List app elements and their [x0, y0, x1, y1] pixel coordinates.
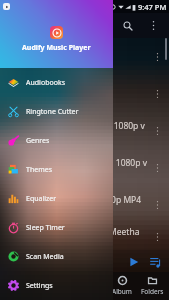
button[interactable]: Song options	[150, 124, 164, 138]
staticText: Thoda Thoda Pyar Khatta Meetha	[6, 226, 140, 238]
button[interactable]: Ringtone Cutter	[0, 97, 113, 126]
staticText: Tum Hi Ho	[6, 46, 48, 58]
button[interactable]: Song options	[150, 50, 164, 64]
staticText: Chahun Main Ya Na full HD 1080p v	[6, 157, 147, 169]
staticText: 4:03	[6, 171, 18, 179]
button[interactable]: Genres	[0, 126, 113, 155]
button[interactable]: Folders	[137, 272, 167, 300]
button[interactable]: Queue	[150, 257, 161, 268]
staticText: Genres	[26, 136, 50, 146]
button[interactable]: Themes	[0, 155, 113, 184]
staticText: 3:49	[6, 208, 18, 216]
staticText: Scan Media	[26, 252, 64, 262]
button[interactable]: Tum Hi Ho	[0, 38, 169, 75]
button[interactable]: Sunn Raha Hai	[0, 75, 169, 112]
staticText: Album	[112, 287, 132, 296]
button[interactable]: Settings	[0, 271, 113, 300]
staticText: Ringtone Cutter	[26, 107, 79, 117]
staticText: 3:50	[6, 240, 18, 248]
staticText: Tracks	[52, 287, 72, 296]
button[interactable]: Chahun Main Ya Na full HD 1080p v	[0, 149, 169, 186]
staticText: 9:47 PM	[138, 2, 167, 12]
staticText: Dilliwaali Girlfriend HD1080p MP4	[6, 194, 142, 206]
button[interactable]: Aashiqui 2 Mashup full HD 1080p v	[0, 112, 169, 149]
button[interactable]: Audiobooks	[0, 68, 113, 97]
staticText: Audiobooks	[26, 78, 66, 88]
button[interactable]: Artist	[77, 272, 107, 300]
button[interactable]: Song options	[150, 87, 164, 101]
button[interactable]: Search	[119, 17, 136, 34]
button[interactable]: Sleep Timer	[0, 213, 113, 242]
button[interactable]: Dilliwaali Girlfriend HD1080p MP4	[0, 186, 169, 223]
button[interactable]: Song options	[150, 230, 164, 244]
staticText: Themes	[26, 165, 53, 175]
button[interactable]: Equalizer	[0, 184, 113, 213]
staticText: Audify Music Player	[22, 43, 91, 53]
staticText: Folders	[141, 287, 164, 296]
staticText: 5:02	[6, 97, 18, 105]
button[interactable]: More options	[145, 17, 162, 34]
button[interactable]: Tracks	[47, 272, 77, 300]
staticText: Equalizer	[26, 194, 57, 204]
staticText: Aashiqui 2 Mashup full HD 1080p v	[6, 120, 145, 132]
button[interactable]: Song options	[150, 161, 164, 175]
staticText: Sunn Raha Hai	[6, 83, 65, 95]
button[interactable]: Thoda Thoda Pyar Khatta Meetha	[0, 223, 169, 250]
button[interactable]: Album	[107, 272, 137, 300]
button[interactable]: Play	[129, 257, 139, 267]
staticText: Settings	[26, 281, 53, 291]
button[interactable]: Song options	[150, 198, 164, 212]
staticText: Sleep Timer	[26, 223, 65, 233]
staticText: 4:07	[6, 134, 18, 142]
button[interactable]: Scan Media	[0, 242, 113, 271]
